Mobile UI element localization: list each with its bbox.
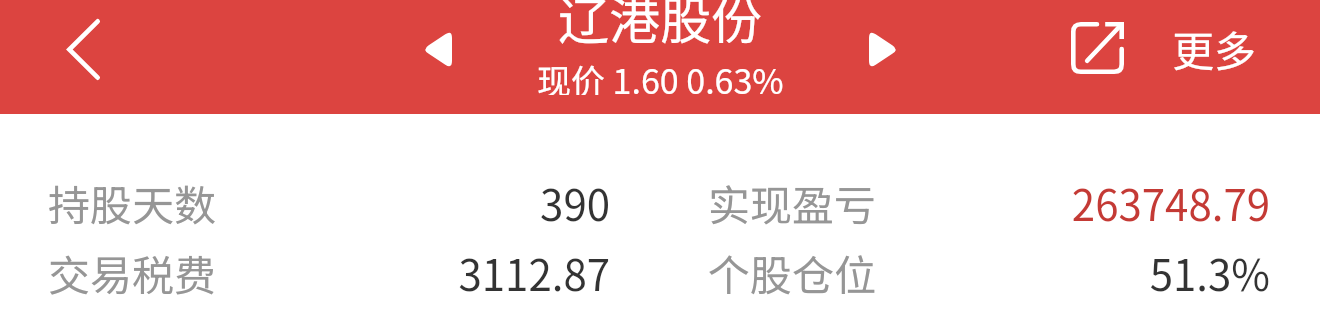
staticText: 个股仓位 [708, 242, 877, 303]
button[interactable]: Previous stock [399, 13, 475, 85]
staticText: 51.3% [1149, 242, 1270, 303]
staticText: 3112.87 [458, 242, 610, 303]
staticText: 现价 1.60 0.63% [537, 55, 784, 95]
staticText: 390 [540, 172, 610, 233]
staticText: 更多 [1172, 18, 1257, 79]
staticText: 实现盈亏 [708, 172, 877, 233]
button[interactable]: 持股天数 [48, 169, 610, 239]
staticText: 持股天数 [48, 172, 217, 233]
button[interactable]: 个股仓位 [708, 239, 1270, 309]
button[interactable]: Back [40, 6, 126, 92]
button[interactable]: 实现盈亏 [708, 169, 1270, 239]
staticText: 交易税费 [48, 242, 217, 303]
staticText: 263748.79 [1071, 172, 1270, 233]
button[interactable]: 交易税费 [48, 239, 610, 309]
button[interactable]: Next stock [846, 13, 922, 85]
button[interactable]: 更多 [1051, 0, 1277, 105]
staticText: 辽港股份 [558, 0, 763, 54]
